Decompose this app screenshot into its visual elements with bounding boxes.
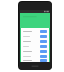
button[interactable]: Action bbox=[40, 45, 47, 48]
button[interactable]: Action bbox=[40, 35, 47, 38]
button[interactable]: Action bbox=[40, 50, 47, 53]
button[interactable]: Action bbox=[21, 59, 49, 62]
button[interactable]: Action bbox=[40, 55, 47, 58]
button[interactable]: Action bbox=[40, 30, 47, 33]
button[interactable]: Action bbox=[21, 39, 49, 44]
button[interactable]: Action bbox=[40, 40, 47, 43]
button[interactable]: Action bbox=[21, 49, 49, 54]
button[interactable]: Action bbox=[21, 34, 49, 39]
button[interactable]: Action bbox=[21, 44, 49, 49]
button[interactable]: Action bbox=[21, 29, 49, 34]
button[interactable]: Action bbox=[40, 59, 47, 62]
button[interactable]: Action bbox=[21, 54, 49, 59]
